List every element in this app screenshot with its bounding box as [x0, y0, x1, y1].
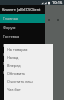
staticText: 10:16 [52, 0, 63, 5]
button[interactable]: Контакты [0, 41, 45, 50]
staticText: Настройки [3, 70, 23, 75]
staticText: Форум [3, 25, 16, 30]
button[interactable]: Чат-бот [4, 85, 53, 93]
staticText: На товарах [7, 47, 28, 52]
staticText: Гостевая [3, 34, 20, 39]
button[interactable]: Гостевая [0, 32, 45, 41]
button[interactable]: Очистить кеш [4, 77, 53, 85]
staticText: Контакты [3, 43, 21, 48]
button[interactable]: Обновить [4, 69, 53, 77]
staticText: Профиль [3, 61, 20, 66]
staticText: Обновить [7, 71, 26, 76]
button[interactable]: Вперед [4, 61, 53, 69]
button[interactable]: Форум [0, 23, 45, 32]
button[interactable]: Профиль [0, 59, 45, 68]
button[interactable]: На товарах [4, 45, 53, 53]
button[interactable]: Главная [0, 14, 45, 23]
staticText: Очистить кеш [7, 79, 33, 84]
button[interactable]: More options [55, 17, 60, 22]
staticText: Назад [7, 55, 19, 60]
staticText: Чат-бот [7, 87, 21, 92]
button[interactable]: Refresh [46, 17, 51, 22]
staticText: Клиент: JaBrICSClient v2.1 [2, 7, 45, 12]
staticText: Вперед [7, 63, 21, 68]
button[interactable]: Настройки [0, 68, 45, 77]
button[interactable]: Назад [4, 53, 53, 61]
button[interactable]: Новости [0, 50, 45, 59]
staticText: Новости [3, 52, 19, 57]
staticText: Главная [3, 16, 18, 21]
